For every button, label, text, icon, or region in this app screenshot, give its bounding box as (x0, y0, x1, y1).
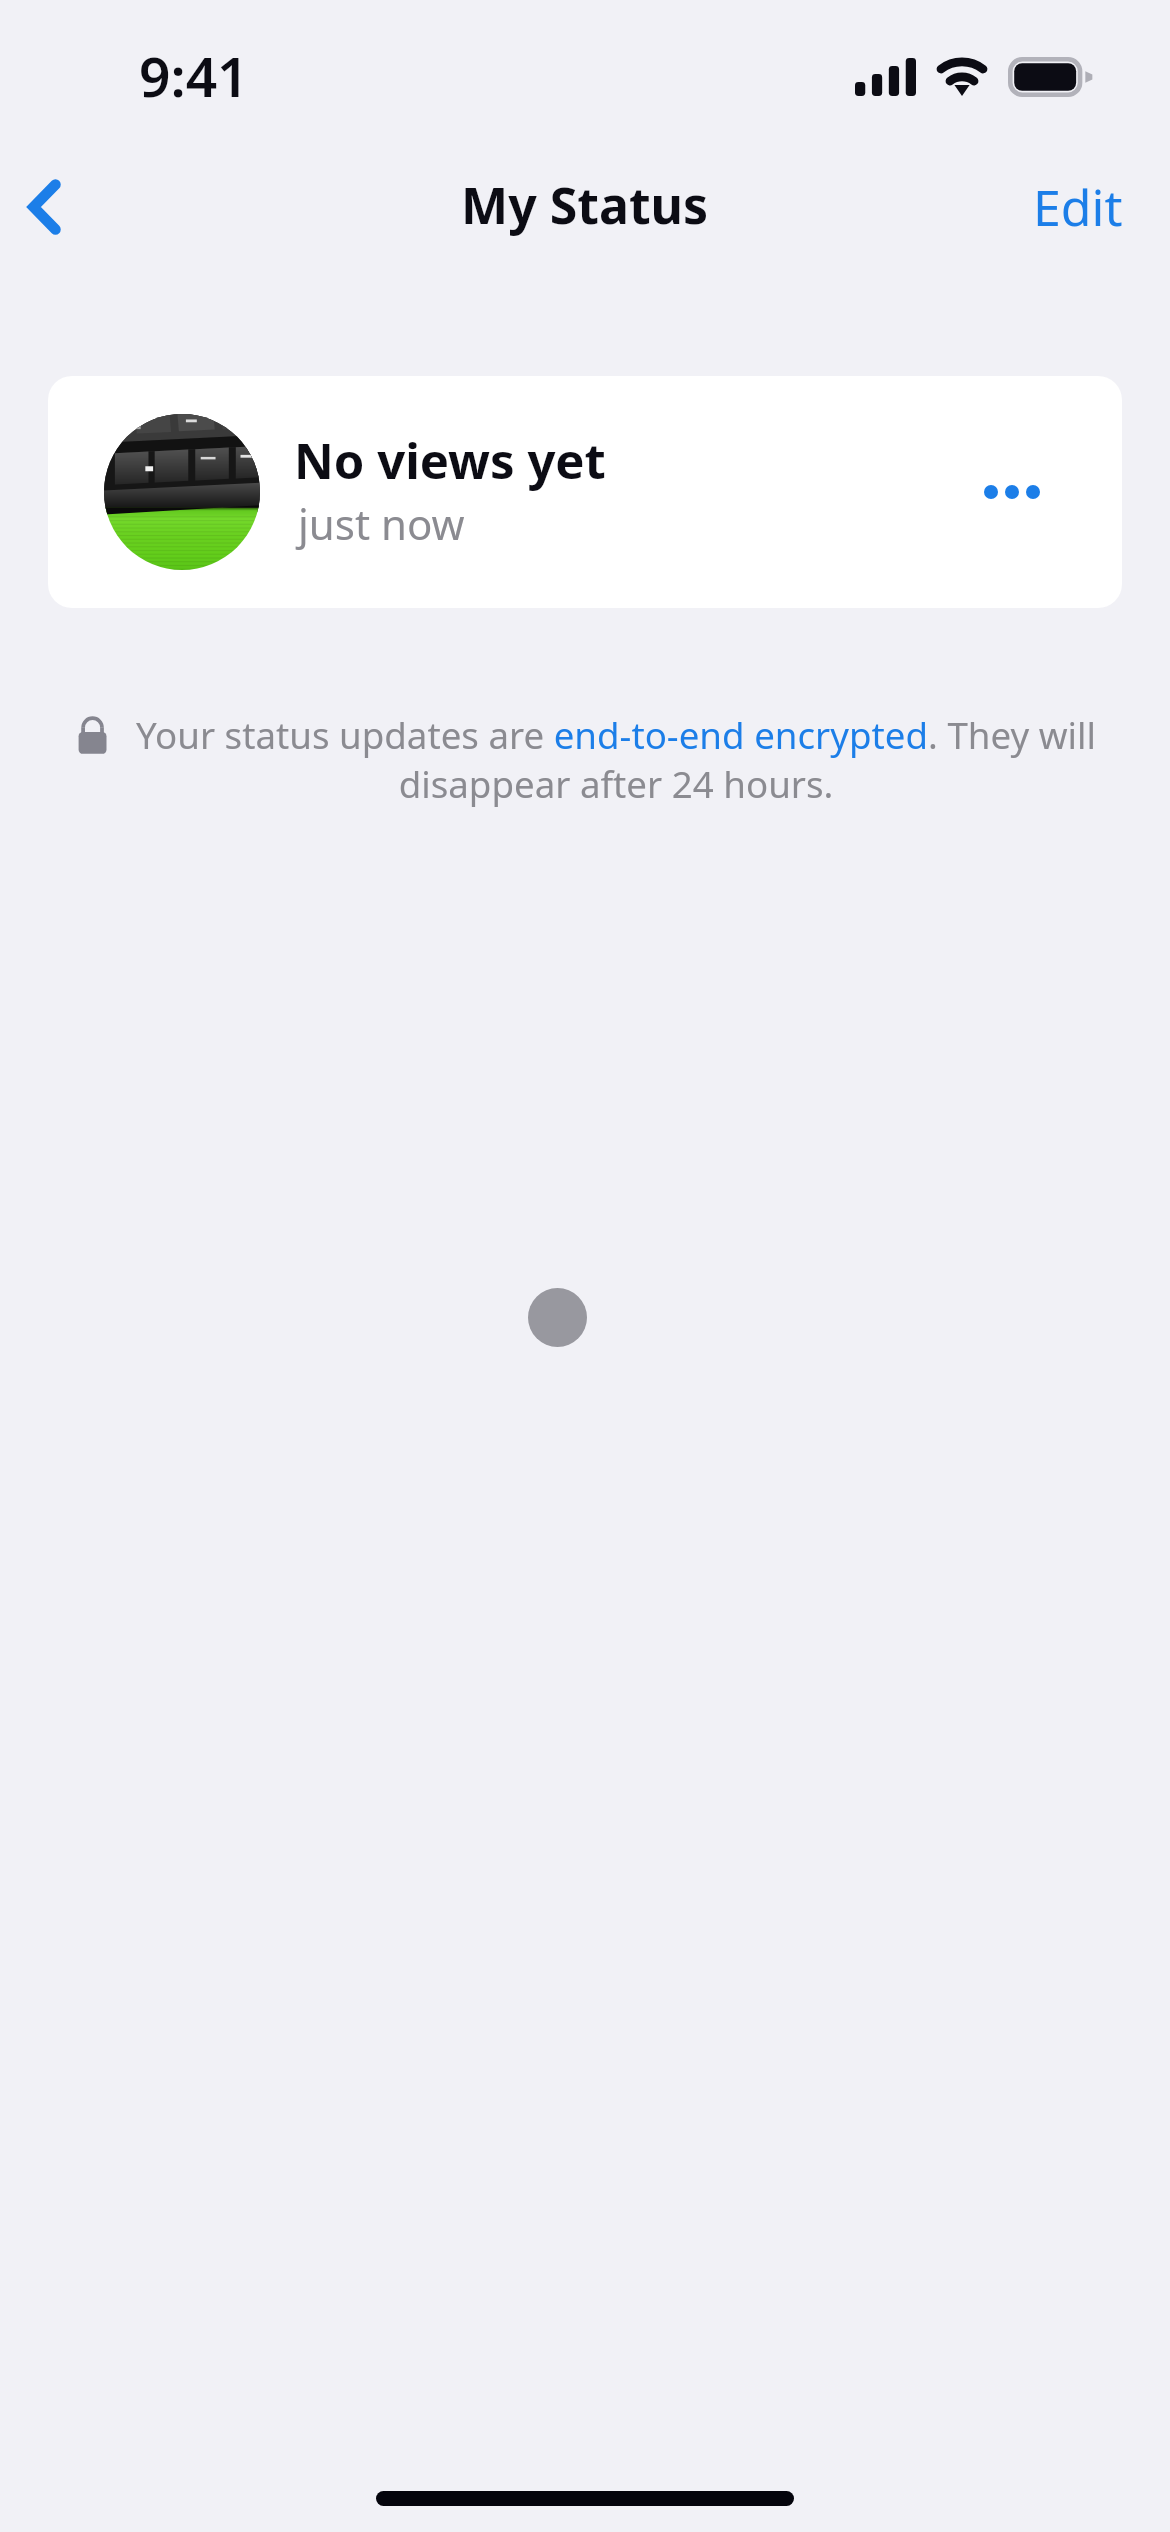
button[interactable]: Edit (999, 155, 1170, 265)
staticText: No views yet (294, 427, 606, 494)
button[interactable]: No views yet (48, 376, 1122, 608)
staticText: Your status updates are end-to-end encry… (133, 710, 1099, 808)
button[interactable]: More options (924, 433, 1099, 551)
staticText: Edit (1033, 173, 1123, 241)
staticText: 9:41 (139, 38, 249, 113)
staticText: My Status (461, 171, 709, 239)
button[interactable]: Back (0, 156, 88, 258)
staticText: just now (298, 495, 465, 552)
